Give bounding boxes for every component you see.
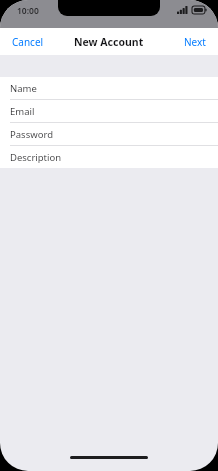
button[interactable]: Next <box>176 31 218 53</box>
staticText: Cancel <box>12 35 44 49</box>
staticText: Description <box>10 151 62 164</box>
staticText: New Account <box>74 35 144 49</box>
button[interactable]: Email <box>0 100 218 122</box>
button[interactable]: Cancel <box>0 31 52 53</box>
button[interactable]: Name <box>0 77 218 99</box>
staticText: Next <box>184 35 206 49</box>
staticText: Name <box>10 82 37 95</box>
staticText: Password <box>10 128 53 141</box>
staticText: Email <box>10 105 35 118</box>
staticText: 10:00 <box>17 5 39 17</box>
button[interactable]: Password <box>0 123 218 145</box>
button[interactable]: Description <box>0 146 218 168</box>
other: Home indicator <box>70 456 148 459</box>
